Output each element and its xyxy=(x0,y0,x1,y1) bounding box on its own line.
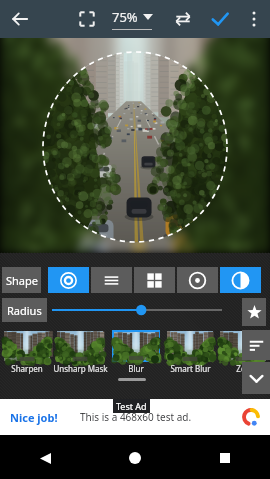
staticText: Nice job! xyxy=(10,410,58,425)
button[interactable] xyxy=(167,331,213,361)
button[interactable]: Radius slider xyxy=(50,298,236,322)
staticText: Shape xyxy=(6,273,38,288)
button[interactable] xyxy=(4,331,50,361)
staticText: Test Ad xyxy=(116,400,147,412)
button[interactable]: Back xyxy=(8,7,32,31)
button[interactable]: Invert xyxy=(220,267,261,293)
staticText: Zoo xyxy=(236,363,251,374)
button[interactable] xyxy=(114,332,158,360)
staticText: Unsharp Mask xyxy=(53,363,108,374)
button[interactable]: Radius xyxy=(2,298,47,322)
button[interactable]: More options xyxy=(244,9,264,29)
button[interactable]: Apply xyxy=(208,7,232,31)
button[interactable]: Collapse panel xyxy=(242,362,270,394)
button[interactable]: Recents xyxy=(208,441,242,475)
button[interactable]: Fullscreen xyxy=(75,7,99,31)
button[interactable]: Radial xyxy=(177,267,218,293)
button[interactable]: Shape xyxy=(2,267,41,293)
staticText: Sharpen xyxy=(11,363,43,374)
button[interactable] xyxy=(220,331,266,361)
button[interactable] xyxy=(57,331,103,361)
button[interactable]: Back xyxy=(28,441,62,475)
button[interactable]: Compare xyxy=(171,7,195,31)
staticText: 75% xyxy=(112,8,138,26)
button[interactable]: Lines xyxy=(91,267,132,293)
staticText: Smart Blur xyxy=(170,363,211,374)
button[interactable]: 75% xyxy=(112,8,153,30)
staticText: Radius xyxy=(7,303,42,318)
button[interactable]: Home xyxy=(118,441,152,475)
staticText: Blur xyxy=(128,363,144,374)
button[interactable]: Grid xyxy=(134,267,175,293)
button[interactable]: Ellipse xyxy=(48,267,89,293)
button[interactable]: Filter list xyxy=(242,330,270,360)
button[interactable]: Favorite xyxy=(242,298,266,326)
staticText: This is a 468x60 test ad. xyxy=(80,410,192,424)
